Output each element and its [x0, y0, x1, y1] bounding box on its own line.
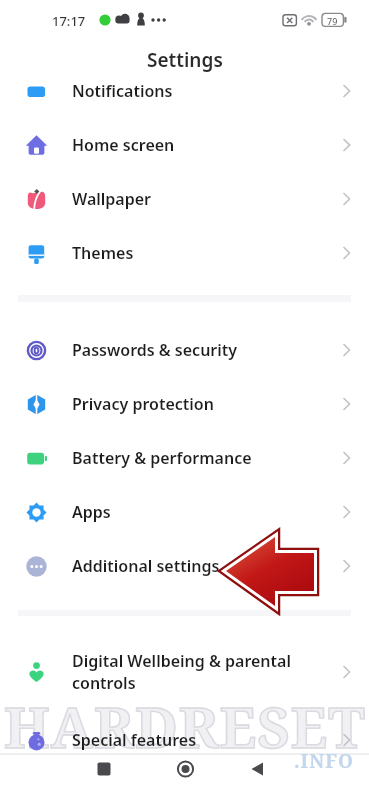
button[interactable] [246, 755, 369, 800]
button[interactable]: Home screen [0, 118, 369, 172]
staticText: 79 [327, 15, 338, 27]
button[interactable]: Themes [0, 226, 369, 280]
staticText: 17:17 [52, 12, 86, 30]
staticText: HARDRESET [4, 688, 366, 764]
staticText: Additional settings [72, 555, 220, 577]
staticText: Wallpaper [72, 188, 152, 210]
button[interactable]: Digital Wellbeing & parental [0, 640, 369, 704]
button[interactable]: Additional settings [0, 539, 369, 593]
staticText: Digital Wellbeing & parental [72, 650, 291, 672]
staticText: Passwords & security [72, 339, 238, 361]
button[interactable]: Wallpaper [0, 172, 369, 226]
button[interactable]: Battery & performance [0, 431, 369, 485]
button[interactable] [123, 755, 246, 800]
staticText: Privacy protection [72, 393, 214, 415]
staticText: HARDRESET [4, 688, 366, 764]
button[interactable] [0, 755, 123, 800]
button[interactable]: Special features [0, 713, 369, 767]
button[interactable]: Notifications [0, 64, 369, 118]
staticText: Apps [72, 501, 111, 523]
button[interactable]: Privacy protection [0, 377, 369, 431]
staticText: Notifications [72, 80, 173, 102]
staticText: Settings [147, 47, 223, 73]
staticText: Themes [72, 242, 134, 264]
staticText: controls [72, 672, 136, 694]
staticText: Battery & performance [72, 447, 252, 469]
button[interactable]: Passwords & security [0, 323, 369, 377]
staticText: .INFO [294, 748, 354, 774]
button[interactable]: Apps [0, 485, 369, 539]
staticText: Special features [72, 729, 197, 751]
staticText: Home screen [72, 134, 175, 156]
